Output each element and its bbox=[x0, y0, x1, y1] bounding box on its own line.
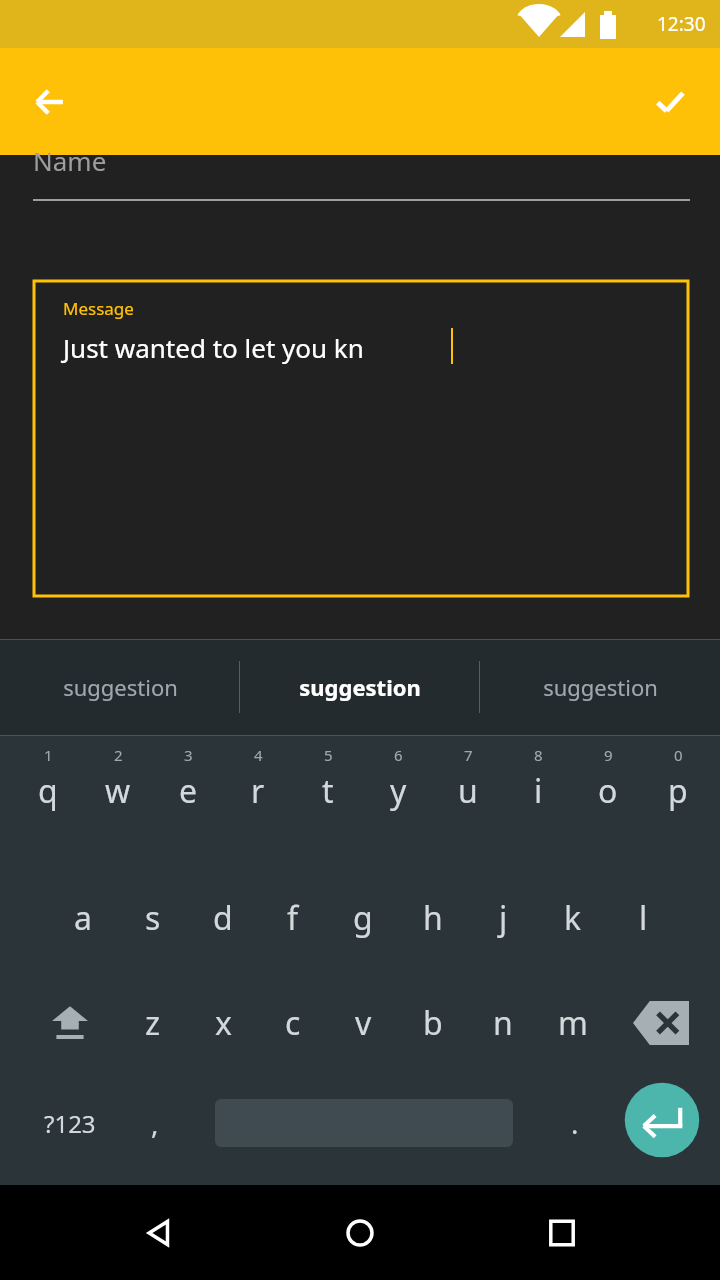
staticText: 0 bbox=[674, 745, 683, 765]
staticText: i bbox=[534, 769, 543, 813]
staticText: y bbox=[390, 769, 407, 813]
button[interactable]: ?123 bbox=[20, 1083, 120, 1163]
button[interactable]: Enter bbox=[620, 1078, 704, 1162]
staticText: 6 bbox=[394, 745, 403, 765]
staticText: h bbox=[423, 896, 443, 940]
button[interactable]: 4 bbox=[223, 745, 293, 850]
staticText: suggestion bbox=[299, 672, 421, 702]
button[interactable]: , bbox=[122, 1083, 188, 1163]
staticText: 12:30 bbox=[657, 11, 706, 37]
staticText: . bbox=[571, 1104, 579, 1142]
button[interactable]: Shift bbox=[35, 980, 105, 1065]
staticText: k bbox=[564, 896, 582, 940]
button[interactable]: z bbox=[118, 980, 188, 1065]
button[interactable]: 9 bbox=[573, 745, 643, 850]
button[interactable]: Recent apps bbox=[517, 1185, 607, 1280]
button[interactable]: l bbox=[608, 875, 678, 960]
staticText: x bbox=[215, 1001, 232, 1045]
button[interactable]: Message bbox=[33, 280, 689, 597]
staticText: d bbox=[213, 896, 233, 940]
button[interactable]: suggestion bbox=[480, 639, 720, 735]
button[interactable]: 2 bbox=[83, 745, 153, 850]
button[interactable]: 6 bbox=[363, 745, 433, 850]
staticText: 9 bbox=[604, 745, 613, 765]
button[interactable]: x bbox=[188, 980, 258, 1065]
button[interactable]: 3 bbox=[153, 745, 223, 850]
button[interactable]: Space bbox=[205, 1083, 523, 1163]
staticText: q bbox=[38, 769, 58, 813]
button[interactable]: . bbox=[542, 1083, 608, 1163]
button[interactable]: 8 bbox=[503, 745, 573, 850]
staticText: l bbox=[639, 896, 648, 940]
staticText: Name bbox=[33, 143, 107, 178]
staticText: c bbox=[285, 1001, 301, 1045]
staticText: g bbox=[353, 896, 373, 940]
button[interactable]: Back bbox=[115, 1185, 205, 1280]
staticText: t bbox=[322, 769, 334, 813]
button[interactable]: k bbox=[538, 875, 608, 960]
staticText: m bbox=[558, 1001, 588, 1045]
staticText: Just wanted to let you kn bbox=[63, 330, 364, 365]
button[interactable]: d bbox=[188, 875, 258, 960]
staticText: a bbox=[74, 896, 92, 940]
staticText: u bbox=[458, 769, 478, 813]
button[interactable]: b bbox=[398, 980, 468, 1065]
button[interactable]: 5 bbox=[293, 745, 363, 850]
button[interactable]: suggestion bbox=[0, 639, 240, 735]
button[interactable]: n bbox=[468, 980, 538, 1065]
button[interactable]: c bbox=[258, 980, 328, 1065]
staticText: 5 bbox=[324, 745, 333, 765]
button[interactable]: 7 bbox=[433, 745, 503, 850]
button[interactable]: h bbox=[398, 875, 468, 960]
staticText: f bbox=[287, 896, 299, 940]
staticText: , bbox=[151, 1104, 159, 1142]
button[interactable]: suggestion bbox=[240, 639, 480, 735]
staticText: r bbox=[251, 769, 265, 813]
staticText: 4 bbox=[254, 745, 263, 765]
staticText: 7 bbox=[464, 745, 473, 765]
staticText: o bbox=[598, 769, 618, 813]
staticText: ?123 bbox=[44, 1107, 96, 1140]
button[interactable]: 0 bbox=[643, 745, 713, 850]
staticText: b bbox=[423, 1001, 443, 1045]
staticText: suggestion bbox=[63, 672, 178, 702]
button[interactable]: Back bbox=[14, 66, 86, 138]
staticText: p bbox=[668, 769, 688, 813]
button[interactable]: g bbox=[328, 875, 398, 960]
staticText: j bbox=[499, 896, 508, 940]
staticText: 1 bbox=[44, 745, 53, 765]
staticText: e bbox=[179, 769, 198, 813]
button[interactable]: m bbox=[538, 980, 608, 1065]
button[interactable]: 1 bbox=[13, 745, 83, 850]
button[interactable]: v bbox=[328, 980, 398, 1065]
staticText: 2 bbox=[114, 745, 123, 765]
button[interactable]: j bbox=[468, 875, 538, 960]
button[interactable]: f bbox=[258, 875, 328, 960]
staticText: w bbox=[105, 769, 131, 813]
staticText: Message bbox=[63, 297, 134, 320]
staticText: 3 bbox=[184, 745, 193, 765]
staticText: v bbox=[355, 1001, 372, 1045]
staticText: s bbox=[145, 896, 161, 940]
staticText: suggestion bbox=[543, 672, 658, 702]
staticText: 8 bbox=[534, 745, 543, 765]
button[interactable]: Home bbox=[315, 1185, 405, 1280]
staticText: z bbox=[145, 1001, 161, 1045]
button[interactable]: Backspace bbox=[626, 980, 696, 1065]
button[interactable]: Done bbox=[634, 66, 706, 138]
button[interactable]: a bbox=[48, 875, 118, 960]
staticText: n bbox=[493, 1001, 513, 1045]
button[interactable]: s bbox=[118, 875, 188, 960]
